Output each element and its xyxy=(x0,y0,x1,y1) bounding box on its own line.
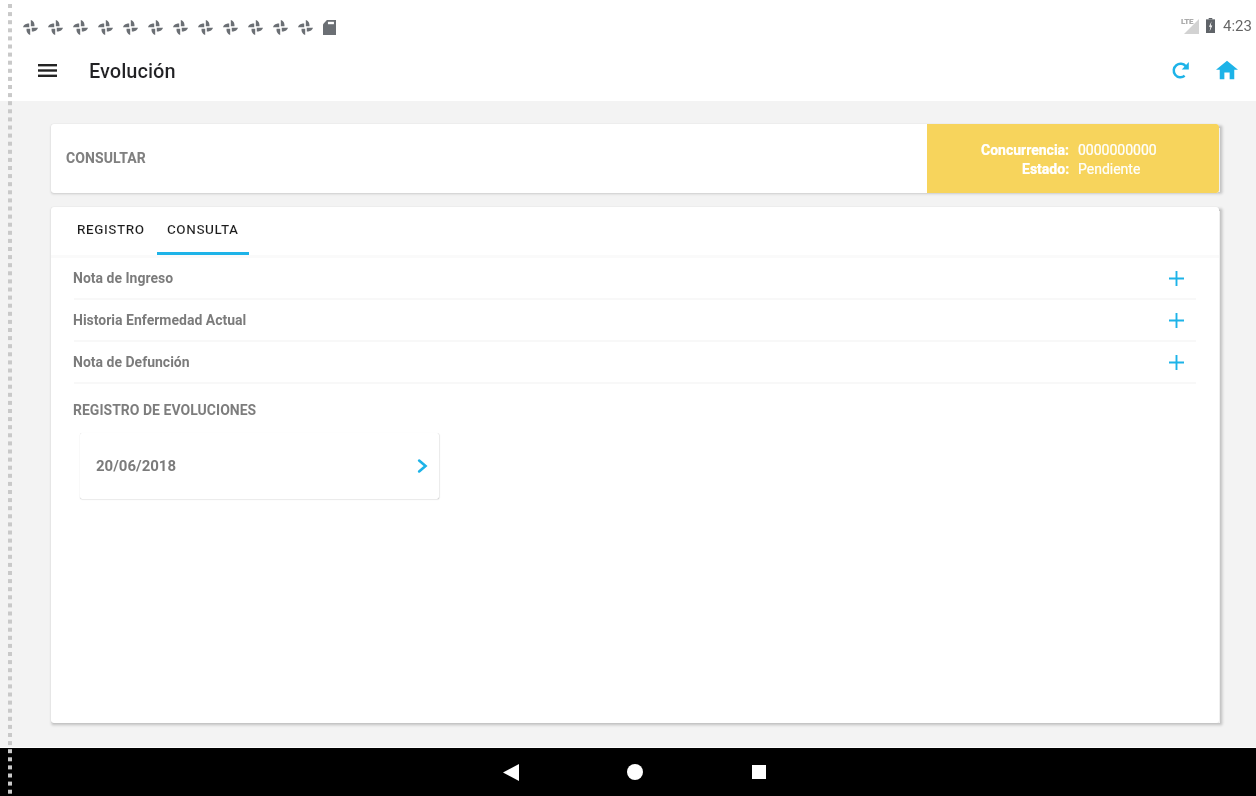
staticText: Nota de Defunción xyxy=(73,354,1161,370)
staticText: Pendiente xyxy=(1078,161,1141,177)
staticText: Estado: xyxy=(1022,161,1070,177)
button[interactable]: Open navigation menu xyxy=(23,46,71,94)
button[interactable]: Home xyxy=(604,748,666,796)
staticText: 20/06/2018 xyxy=(96,457,177,475)
button[interactable]: Back xyxy=(480,748,542,796)
staticText: Evolución xyxy=(89,59,176,82)
other: Add Nota de Defunción xyxy=(1161,347,1191,377)
staticText: Nota de Ingreso xyxy=(73,270,1161,286)
staticText: Concurrencia: xyxy=(981,142,1070,158)
button[interactable]: Refresh xyxy=(1156,46,1204,94)
staticText: LTE xyxy=(1181,17,1194,26)
staticText: REGISTRO DE EVOLUCIONES xyxy=(73,402,257,418)
button[interactable]: Recent apps xyxy=(728,748,790,796)
button[interactable]: Historia Enfermedad Actual xyxy=(51,300,1219,340)
button[interactable]: CONSULTA xyxy=(157,207,249,255)
other: Add Historia Enfermedad Actual xyxy=(1161,305,1191,335)
staticText: Historia Enfermedad Actual xyxy=(73,312,1161,328)
staticText: CONSULTA xyxy=(167,221,239,237)
button[interactable]: CONSULTAR xyxy=(51,124,1219,193)
staticText: CONSULTAR xyxy=(66,150,146,166)
button[interactable]: Nota de Ingreso xyxy=(51,258,1219,298)
other: Add Nota de Ingreso xyxy=(1161,263,1191,293)
staticText: 4:23 xyxy=(1223,17,1252,35)
button[interactable]: Nota de Defunción xyxy=(51,342,1219,382)
button[interactable]: 20/06/2018 xyxy=(80,433,439,499)
button[interactable]: REGISTRO xyxy=(65,207,157,255)
button[interactable]: Home xyxy=(1203,46,1251,94)
staticText: REGISTRO xyxy=(77,221,145,237)
staticText: 0000000000 xyxy=(1078,142,1157,158)
